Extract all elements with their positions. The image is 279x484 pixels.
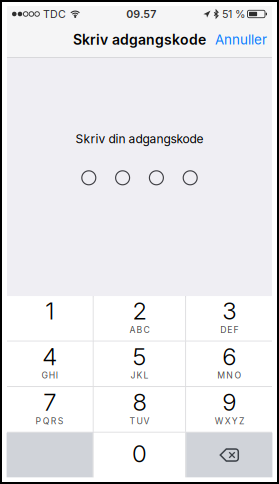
staticText: PQRS — [36, 416, 64, 426]
button[interactable]: 3 — [186, 296, 272, 341]
staticText: 09.57 — [126, 7, 156, 20]
button[interactable]: 6 — [186, 342, 272, 386]
staticText: 5 — [132, 342, 146, 371]
button[interactable]: 0 — [94, 433, 185, 477]
staticText: 1 — [45, 296, 54, 325]
staticText: 2 — [132, 296, 146, 325]
staticText: 0 — [132, 439, 147, 468]
button[interactable]: 5 — [94, 342, 185, 386]
staticText: GHI — [42, 370, 58, 381]
staticText: Skriv adgangskode — [73, 31, 206, 48]
staticText: JKL — [130, 370, 149, 381]
button[interactable]: 4 — [7, 342, 93, 386]
staticText: ABC — [129, 325, 150, 335]
staticText: Skriv din adgangskode — [75, 131, 203, 146]
staticText: 4 — [42, 342, 57, 371]
staticText: 6 — [222, 342, 236, 371]
staticText: DEF — [220, 325, 238, 335]
button[interactable]: 2 — [94, 296, 185, 341]
button[interactable]: Slet — [186, 433, 272, 477]
staticText: 7 — [43, 387, 56, 416]
staticText: 3 — [222, 296, 236, 325]
staticText: 9 — [222, 387, 236, 416]
button[interactable]: 8 — [94, 387, 185, 432]
button[interactable]: 1 — [7, 296, 93, 341]
staticText: 8 — [132, 387, 146, 416]
staticText: TUV — [129, 416, 150, 426]
staticText: 51 % — [222, 7, 245, 20]
button[interactable]: 7 — [7, 387, 93, 432]
staticText: WXYZ — [215, 416, 244, 426]
staticText: TDC — [43, 7, 66, 20]
button[interactable]: Annuller — [210, 22, 272, 57]
staticText: Annuller — [215, 32, 267, 48]
staticText: MNO — [217, 370, 241, 381]
button[interactable]: 9 — [186, 387, 272, 432]
